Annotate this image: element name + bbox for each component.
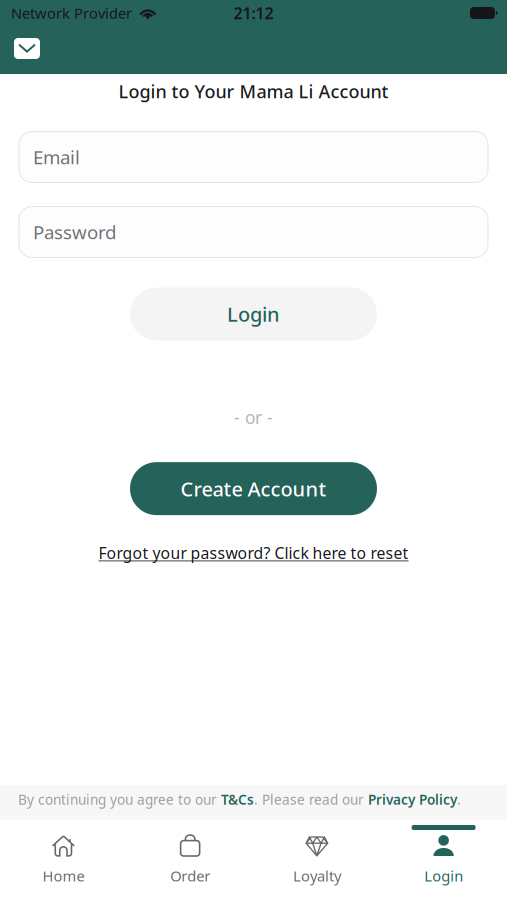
staticText: Email <box>33 145 80 169</box>
button[interactable]: Messages <box>0 26 50 65</box>
staticText: 21:12 <box>233 2 273 24</box>
button[interactable]: T&Cs <box>221 790 254 809</box>
staticText: . <box>457 790 461 809</box>
button[interactable]: Order <box>127 820 254 900</box>
staticText: By continuing you agree to our <box>18 790 221 809</box>
staticText: Network Provider <box>11 3 132 23</box>
button[interactable]: Loyalty <box>253 820 380 900</box>
staticText: Loyalty <box>293 866 341 885</box>
staticText: Password <box>33 220 116 244</box>
button[interactable]: Forgot your password? Click here to rese… <box>98 542 408 563</box>
staticText: Home <box>42 866 84 885</box>
staticText: T&Cs <box>221 790 254 809</box>
button[interactable]: Home <box>0 820 127 900</box>
button[interactable]: Login <box>380 820 507 900</box>
staticText: Create Account <box>180 475 326 502</box>
staticText: . Please read our <box>254 790 368 809</box>
staticText: Forgot your password? Click here to rese… <box>98 542 408 563</box>
staticText: Login <box>424 866 463 885</box>
staticText: Login <box>227 300 280 328</box>
staticText: Login to Your Mama Li Account <box>118 79 388 103</box>
button[interactable]: Privacy Policy <box>368 790 457 809</box>
button[interactable]: Login <box>130 287 377 340</box>
staticText: Privacy Policy <box>368 790 457 809</box>
staticText: Order <box>170 866 210 885</box>
staticText: - or - <box>234 405 273 429</box>
button[interactable]: Create Account <box>130 462 377 515</box>
